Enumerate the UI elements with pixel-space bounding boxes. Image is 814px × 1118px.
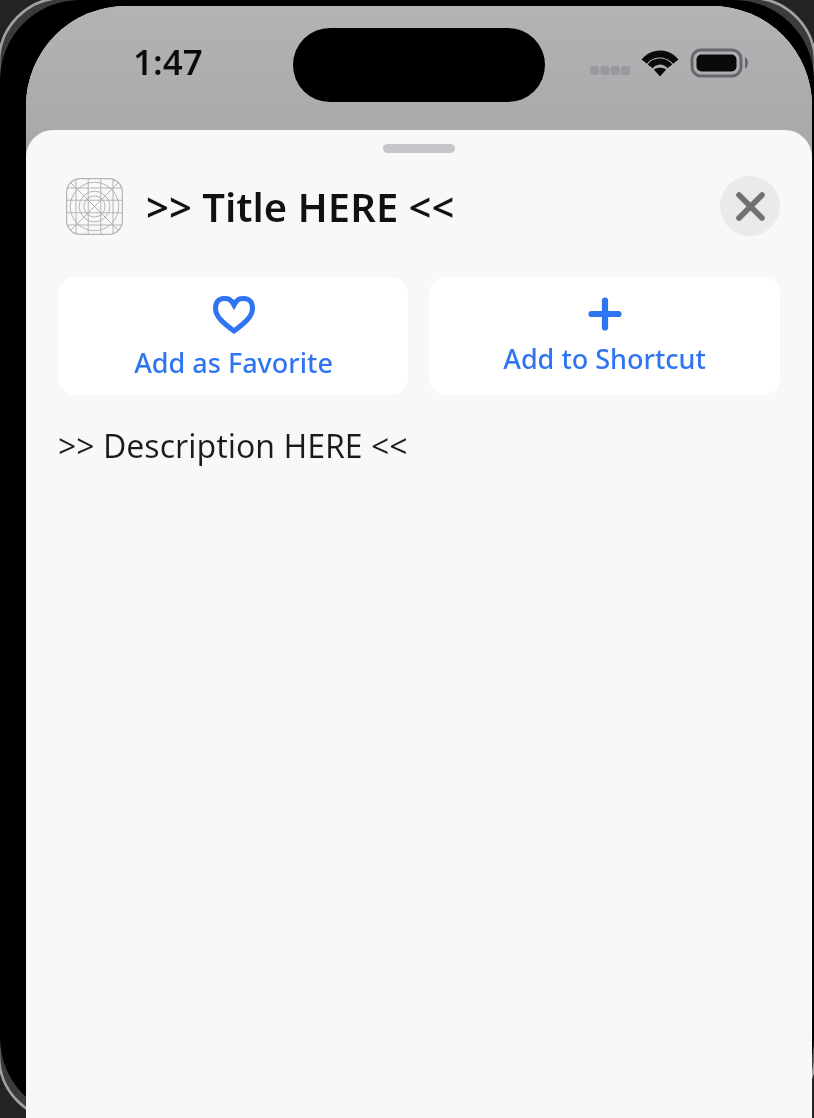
staticText: Add as Favorite bbox=[134, 344, 333, 381]
button[interactable]: Drag handle bbox=[383, 144, 455, 153]
button[interactable]: Add to Shortcut bbox=[429, 277, 780, 395]
staticText: Add to Shortcut bbox=[503, 340, 706, 377]
staticText: >> Title HERE << bbox=[146, 179, 455, 233]
button[interactable]: Close bbox=[720, 176, 780, 236]
button[interactable]: Add as Favorite bbox=[58, 277, 408, 395]
staticText: >> Description HERE << bbox=[58, 424, 408, 468]
staticText: 1:47 bbox=[133, 38, 203, 86]
